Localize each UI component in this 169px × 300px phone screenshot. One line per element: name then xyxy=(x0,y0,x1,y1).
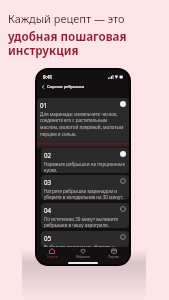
staticText: По истечении 30 минут выложите ребрышки … xyxy=(44,216,119,228)
staticText: Покупки xyxy=(108,255,119,259)
staticText: Сырные ребрышки xyxy=(47,84,85,89)
staticText: 03 xyxy=(44,178,52,186)
button[interactable]: 03 xyxy=(41,175,129,200)
other: Шаг выполнен xyxy=(120,178,126,184)
staticText: Натрите ребрышки маринадом и уберите в х… xyxy=(44,188,124,200)
button[interactable]: 05 xyxy=(41,231,129,247)
other: Шаг выполнен xyxy=(120,206,126,212)
staticText: удобная пошаговая инструкция xyxy=(8,29,127,58)
other: Покупки xyxy=(111,248,117,254)
button[interactable]: Рецепты xyxy=(37,248,67,259)
staticText: 01 xyxy=(40,101,48,109)
other: Рецепты xyxy=(49,248,55,254)
button[interactable]: Избранное xyxy=(67,248,98,259)
staticText: Выберите программу «Котлеты» xyxy=(44,244,115,247)
staticText: 02 xyxy=(44,151,52,159)
staticText: Нарежьте ребрышки на порционные куски. xyxy=(44,161,125,173)
other: Назад xyxy=(41,85,45,89)
staticText: 04 xyxy=(44,206,52,214)
other: Избранное xyxy=(80,248,86,254)
button[interactable]: 04 xyxy=(41,203,129,228)
other: Шаг выполнен xyxy=(120,101,126,107)
other: Шаг выполнен xyxy=(120,234,126,240)
other: Шаг выполнен xyxy=(120,151,126,157)
button[interactable]: Назад xyxy=(37,83,89,90)
staticText: 9:41 xyxy=(43,74,53,80)
staticText: Избранное xyxy=(76,255,90,259)
button[interactable]: Покупки xyxy=(98,248,129,259)
staticText: Для маринада: измельчите чеснок, соедини… xyxy=(40,111,124,138)
button[interactable]: 01 xyxy=(37,98,129,141)
staticText: Каждый рецепт — это xyxy=(8,11,125,26)
staticText: Рецепты xyxy=(47,255,58,259)
staticText: 05 xyxy=(44,234,52,242)
button[interactable]: 02 xyxy=(41,148,129,173)
